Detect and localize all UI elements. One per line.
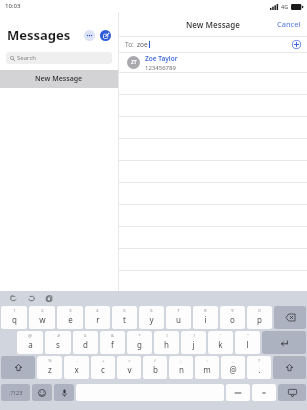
- button[interactable]: Voice input: [54, 384, 74, 401]
- button[interactable]: +: [91, 356, 115, 379]
- staticText: #: [57, 333, 60, 338]
- staticText: t: [123, 314, 126, 325]
- button[interactable]: 3: [57, 306, 83, 329]
- staticText: -: [76, 358, 78, 363]
- staticText: f: [111, 339, 114, 350]
- staticText: Search: [17, 54, 36, 62]
- staticText: v: [127, 364, 132, 375]
- button[interactable]: @: [17, 331, 43, 354]
- staticText: =: [128, 358, 131, 363]
- button[interactable]: Dash: [226, 384, 250, 401]
- staticText: 7: [177, 308, 180, 313]
- staticText: ): [193, 333, 195, 338]
- button[interactable]: Paste: [44, 293, 55, 304]
- button[interactable]: Undo: [8, 293, 19, 304]
- button[interactable]: Redo: [26, 293, 37, 304]
- button[interactable]: Shift: [273, 356, 306, 379]
- button[interactable]: 8: [193, 306, 218, 329]
- staticText: ;: [180, 358, 182, 363]
- button[interactable]: More options: [84, 30, 95, 41]
- staticText: To:: [125, 40, 134, 49]
- staticText: *: [138, 333, 141, 338]
- button[interactable]: ): [181, 331, 206, 354]
- button[interactable]: Return: [262, 331, 306, 354]
- staticText: o: [230, 314, 235, 325]
- staticText: 6: [150, 308, 153, 313]
- staticText: %: [48, 358, 52, 363]
- button[interactable]: ': [208, 331, 233, 354]
- staticText: z: [48, 364, 52, 375]
- button[interactable]: &: [100, 331, 125, 354]
- staticText: d: [83, 339, 88, 350]
- button[interactable]: Search: [6, 52, 112, 64]
- staticText: Cancel: [277, 19, 301, 29]
- button[interactable]: Cancel: [271, 15, 307, 33]
- staticText: m: [203, 364, 211, 375]
- button[interactable]: 7: [166, 306, 191, 329]
- staticText: ?: [258, 358, 260, 363]
- staticText: i: [204, 314, 207, 325]
- staticText: 9: [231, 308, 234, 313]
- staticText: £: [84, 333, 87, 338]
- staticText: w: [39, 314, 46, 325]
- button[interactable]: New Message: [0, 70, 118, 88]
- button[interactable]: 9: [220, 306, 245, 329]
- staticText: ": [247, 333, 249, 338]
- button[interactable]: Numbers and symbols: [1, 384, 30, 401]
- staticText: c: [101, 364, 105, 375]
- staticText: g: [137, 339, 142, 350]
- button[interactable]: ,: [221, 356, 245, 379]
- button[interactable]: ": [235, 331, 260, 354]
- button[interactable]: #: [45, 331, 71, 354]
- staticText: a: [28, 339, 33, 350]
- button[interactable]: *: [127, 331, 152, 354]
- staticText: ,: [232, 358, 234, 363]
- button[interactable]: 4: [85, 306, 110, 329]
- button[interactable]: Backspace: [274, 306, 306, 329]
- button[interactable]: Period: [252, 384, 276, 401]
- button[interactable]: :: [195, 356, 219, 379]
- staticText: 5: [123, 308, 126, 313]
- staticText: :: [206, 358, 208, 363]
- staticText: ': [220, 333, 221, 338]
- button[interactable]: £: [73, 331, 98, 354]
- staticText: &: [111, 333, 114, 338]
- staticText: /: [154, 358, 156, 363]
- staticText: Zoe Taylor: [145, 54, 178, 63]
- button[interactable]: Shift: [1, 356, 35, 379]
- button[interactable]: Emoji: [32, 384, 52, 401]
- button[interactable]: 1: [1, 306, 27, 329]
- button[interactable]: ?: [247, 356, 271, 379]
- staticText: 3: [69, 308, 72, 313]
- staticText: y: [149, 314, 154, 325]
- staticText: (: [166, 333, 168, 338]
- staticText: @: [28, 333, 32, 338]
- staticText: 4G: [281, 3, 289, 10]
- staticText: n: [179, 364, 184, 375]
- button[interactable]: =: [117, 356, 141, 379]
- button[interactable]: ;: [169, 356, 193, 379]
- staticText: b: [153, 364, 158, 375]
- staticText: 1: [13, 308, 16, 313]
- button[interactable]: 5: [112, 306, 137, 329]
- button[interactable]: 6: [139, 306, 164, 329]
- button[interactable]: 0: [247, 306, 272, 329]
- button[interactable]: %: [37, 356, 62, 379]
- staticText: e: [68, 314, 73, 325]
- staticText: @: [229, 364, 237, 375]
- button[interactable]: 2: [29, 306, 55, 329]
- button[interactable]: Add contact: [292, 40, 301, 49]
- staticText: .?123: [9, 389, 23, 396]
- staticText: zoe: [137, 40, 148, 49]
- button[interactable]: /: [143, 356, 167, 379]
- staticText: 10:03: [5, 2, 21, 10]
- button[interactable]: (: [154, 331, 179, 354]
- button[interactable]: ZT: [119, 53, 307, 72]
- staticText: q: [12, 314, 17, 325]
- button[interactable]: Compose new message: [100, 30, 111, 41]
- staticText: 8: [204, 308, 207, 313]
- button[interactable]: -: [64, 356, 89, 379]
- staticText: New Message: [186, 19, 240, 30]
- button[interactable]: Hide keyboard: [278, 384, 306, 401]
